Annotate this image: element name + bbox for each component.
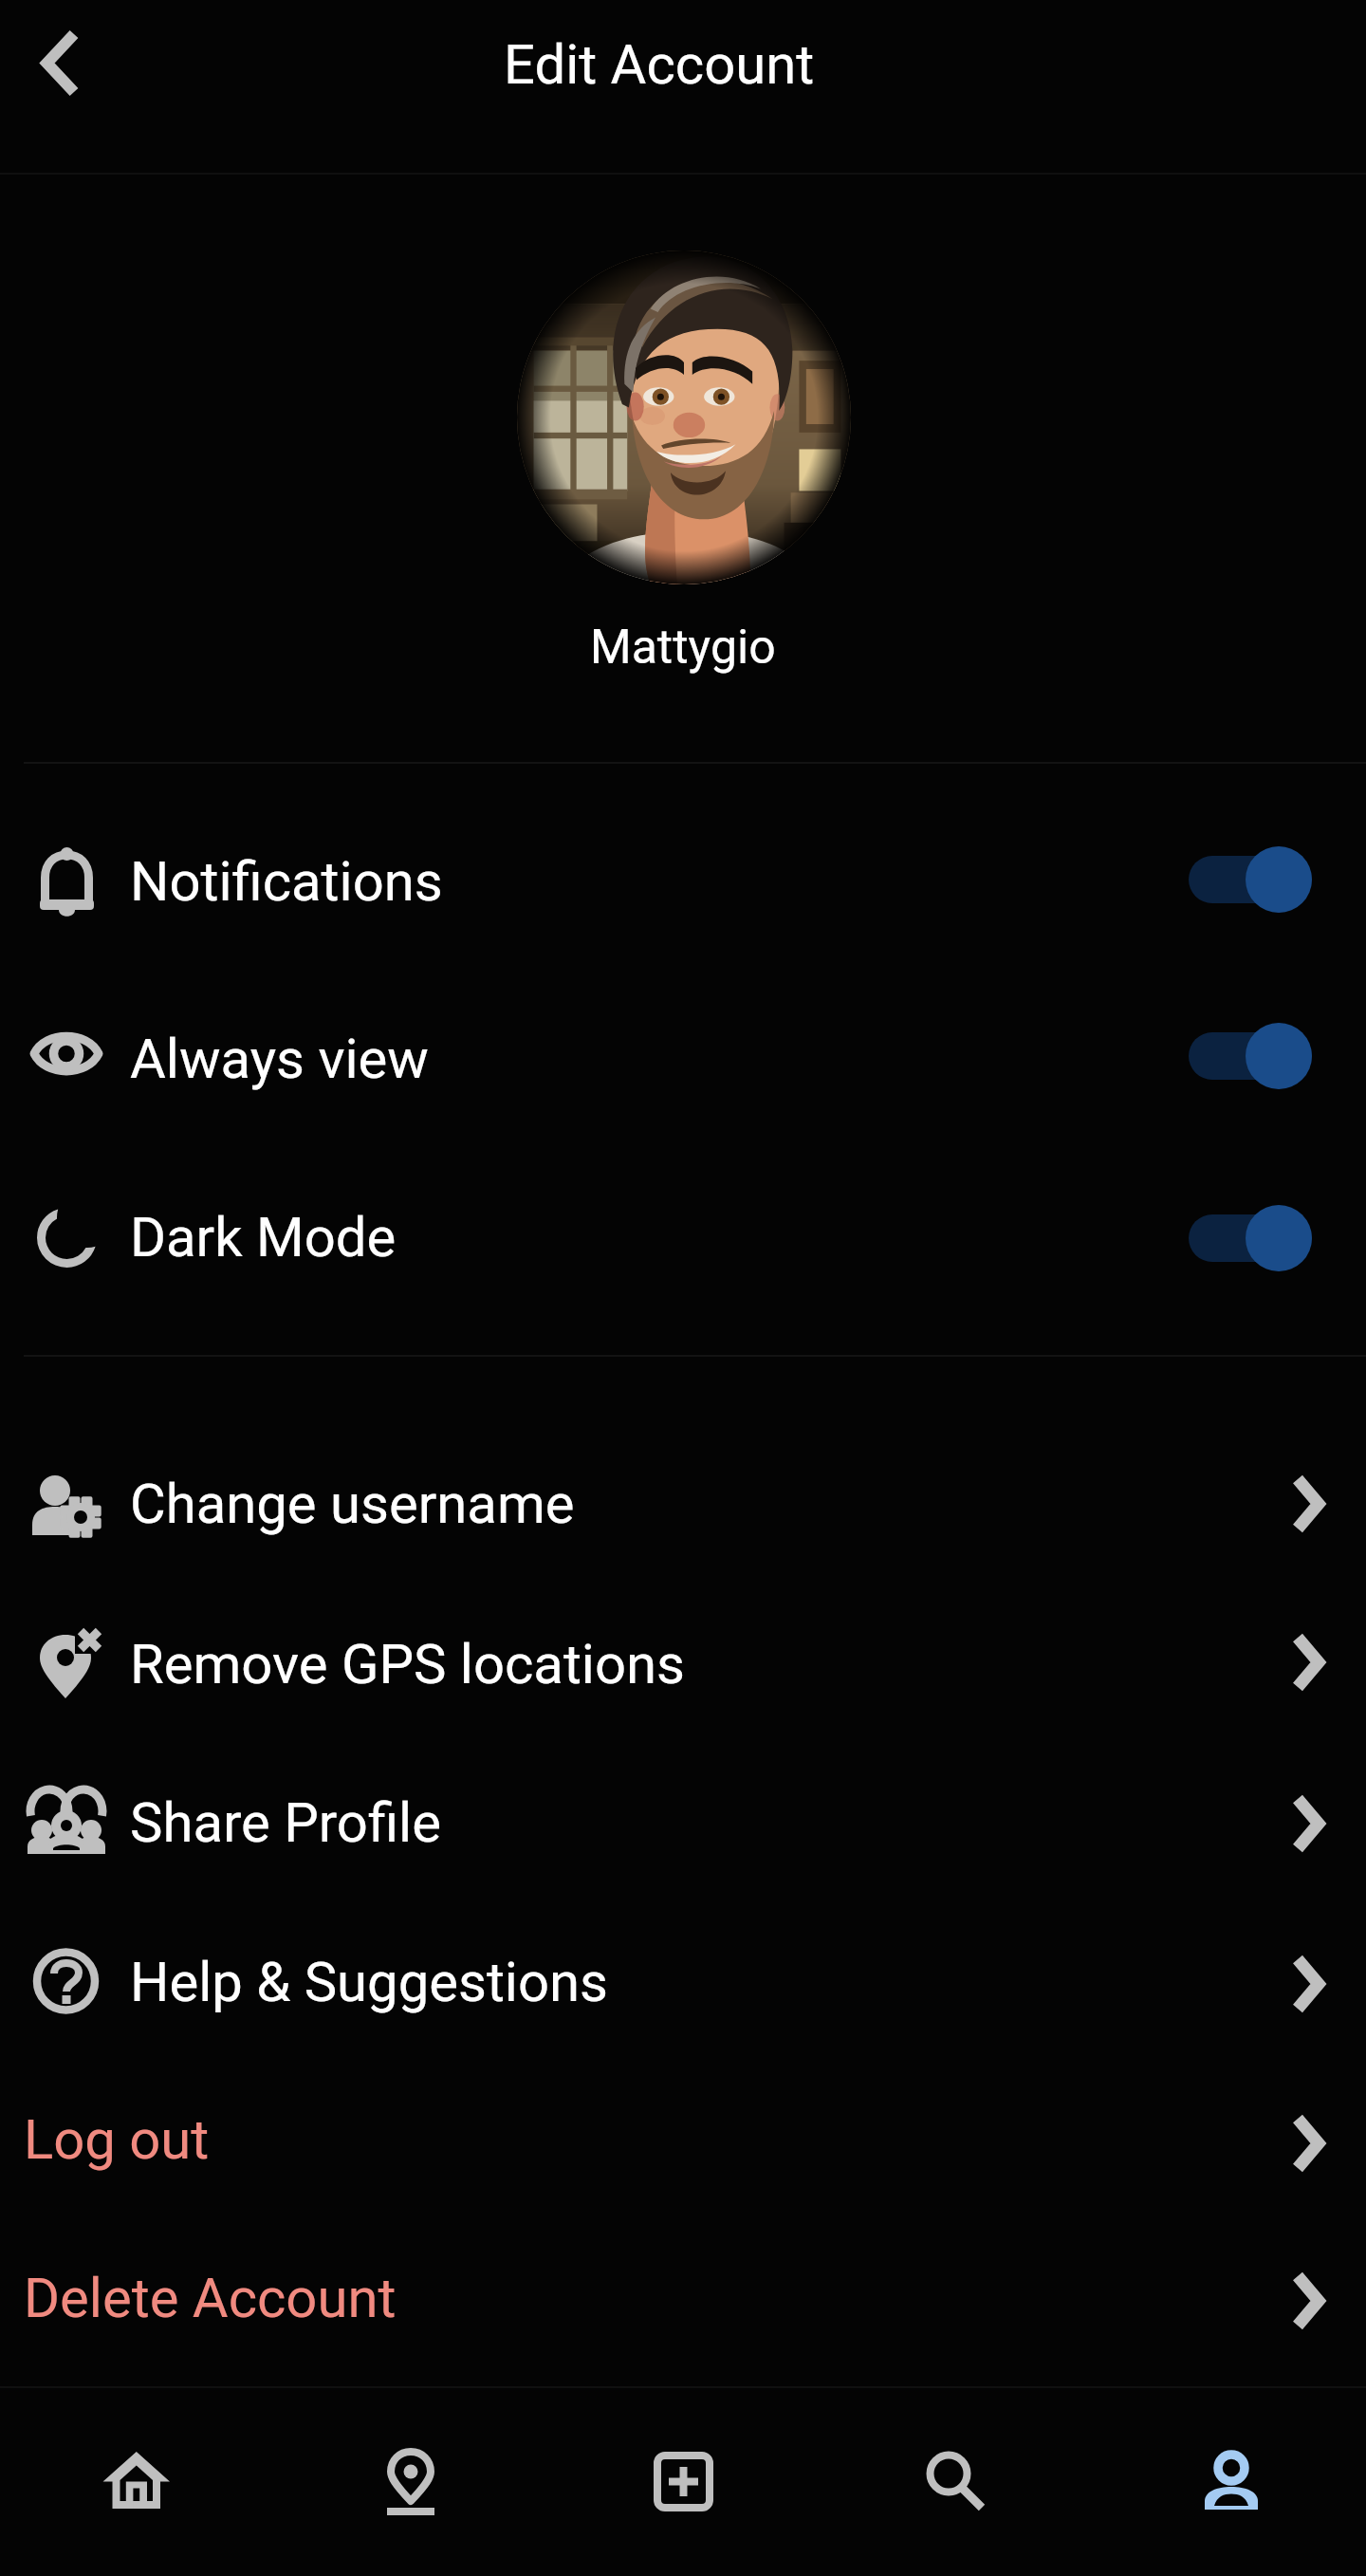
button[interactable]: Always view switch, on [0, 977, 1366, 1137]
button[interactable]: Dark Mode switch, on [1179, 1195, 1321, 1281]
button[interactable]: Dark Mode switch, on [0, 1156, 1366, 1315]
staticText: Help & Suggestions [130, 1950, 609, 2014]
button[interactable]: Places [311, 2390, 508, 2576]
staticText: Log out [24, 2107, 210, 2172]
button[interactable]: Change username [0, 1422, 1366, 1582]
staticText: Notifications [130, 849, 443, 914]
button[interactable]: Profile [1131, 2390, 1328, 2576]
button[interactable]: Log out [0, 2058, 1366, 2217]
button[interactable]: Always view switch, on [1179, 1013, 1321, 1099]
staticText: Change username [130, 1472, 575, 1536]
staticText: Delete Account [24, 2266, 397, 2330]
staticText: Share Profile [130, 1790, 441, 1855]
button[interactable]: Create post [584, 2390, 782, 2576]
staticText: Edit Account [504, 32, 815, 97]
button[interactable]: Remove GPS locations [0, 1583, 1366, 1742]
staticText: Dark Mode [130, 1205, 397, 1269]
button[interactable]: Profile photo [517, 250, 851, 584]
staticText: Remove GPS locations [130, 1632, 686, 1696]
button[interactable]: Notifications switch, on [1179, 837, 1321, 922]
button[interactable]: Home [38, 2390, 235, 2576]
staticText: Always view [130, 1027, 429, 1091]
button[interactable]: Delete Account [0, 2216, 1366, 2376]
button[interactable]: Help & Suggestions [0, 1900, 1366, 2060]
button[interactable]: Notifications switch, on [0, 800, 1366, 959]
staticText: Mattygio [590, 620, 776, 676]
button[interactable]: Back [8, 13, 106, 112]
button[interactable]: Share Profile [0, 1741, 1366, 1900]
button[interactable]: Search [858, 2390, 1055, 2576]
